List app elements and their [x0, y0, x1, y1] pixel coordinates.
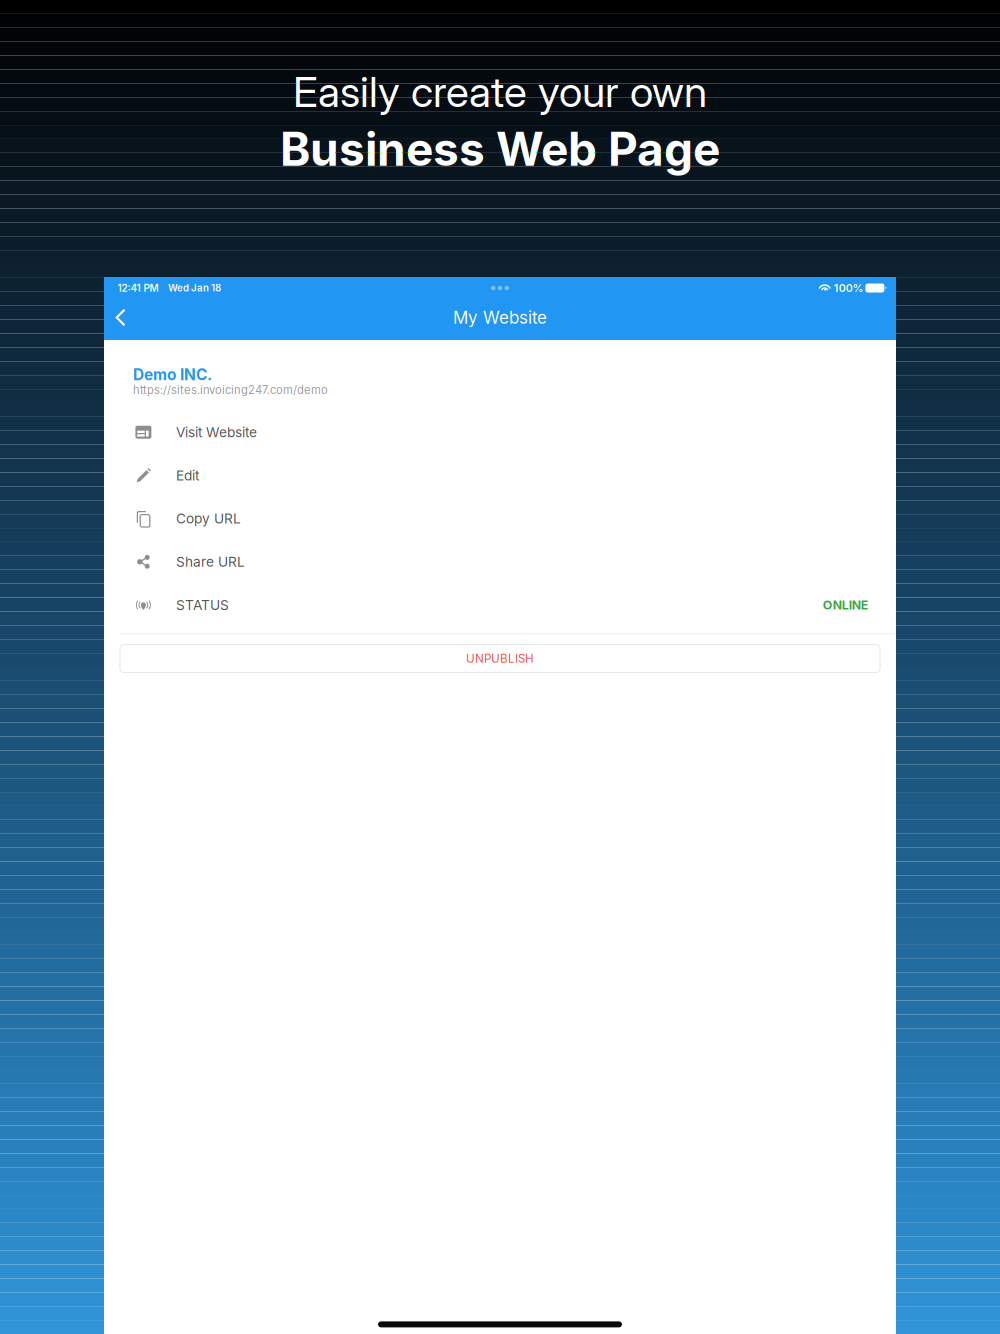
staticText: Easily create your own	[293, 66, 707, 117]
staticText: Demo INC.	[133, 365, 212, 384]
button[interactable]: Visit Website	[104, 411, 896, 454]
staticText: Share URL	[176, 553, 245, 570]
staticText: 12:41 PM	[118, 282, 159, 294]
button[interactable]: Share URL	[104, 540, 896, 583]
staticText: Visit Website	[176, 424, 257, 440]
button[interactable]: Back	[104, 299, 138, 336]
button[interactable]: UNPUBLISH	[120, 644, 880, 672]
staticText: STATUS	[176, 597, 229, 613]
staticText: ONLINE	[823, 597, 868, 612]
staticText: Copy URL	[176, 510, 241, 527]
button[interactable]: Edit	[104, 454, 896, 497]
staticText: My Website	[453, 307, 547, 328]
staticText: Edit	[176, 467, 199, 484]
staticText: Wed Jan 18	[168, 282, 221, 294]
staticText: https://sites.invoicing247.com/demo	[133, 383, 328, 397]
button[interactable]: Copy URL	[104, 497, 896, 540]
button[interactable]: STATUS	[104, 583, 896, 627]
staticText: UNPUBLISH	[466, 651, 534, 665]
staticText: 100%	[834, 281, 864, 294]
staticText: Business Web Page	[280, 121, 720, 177]
